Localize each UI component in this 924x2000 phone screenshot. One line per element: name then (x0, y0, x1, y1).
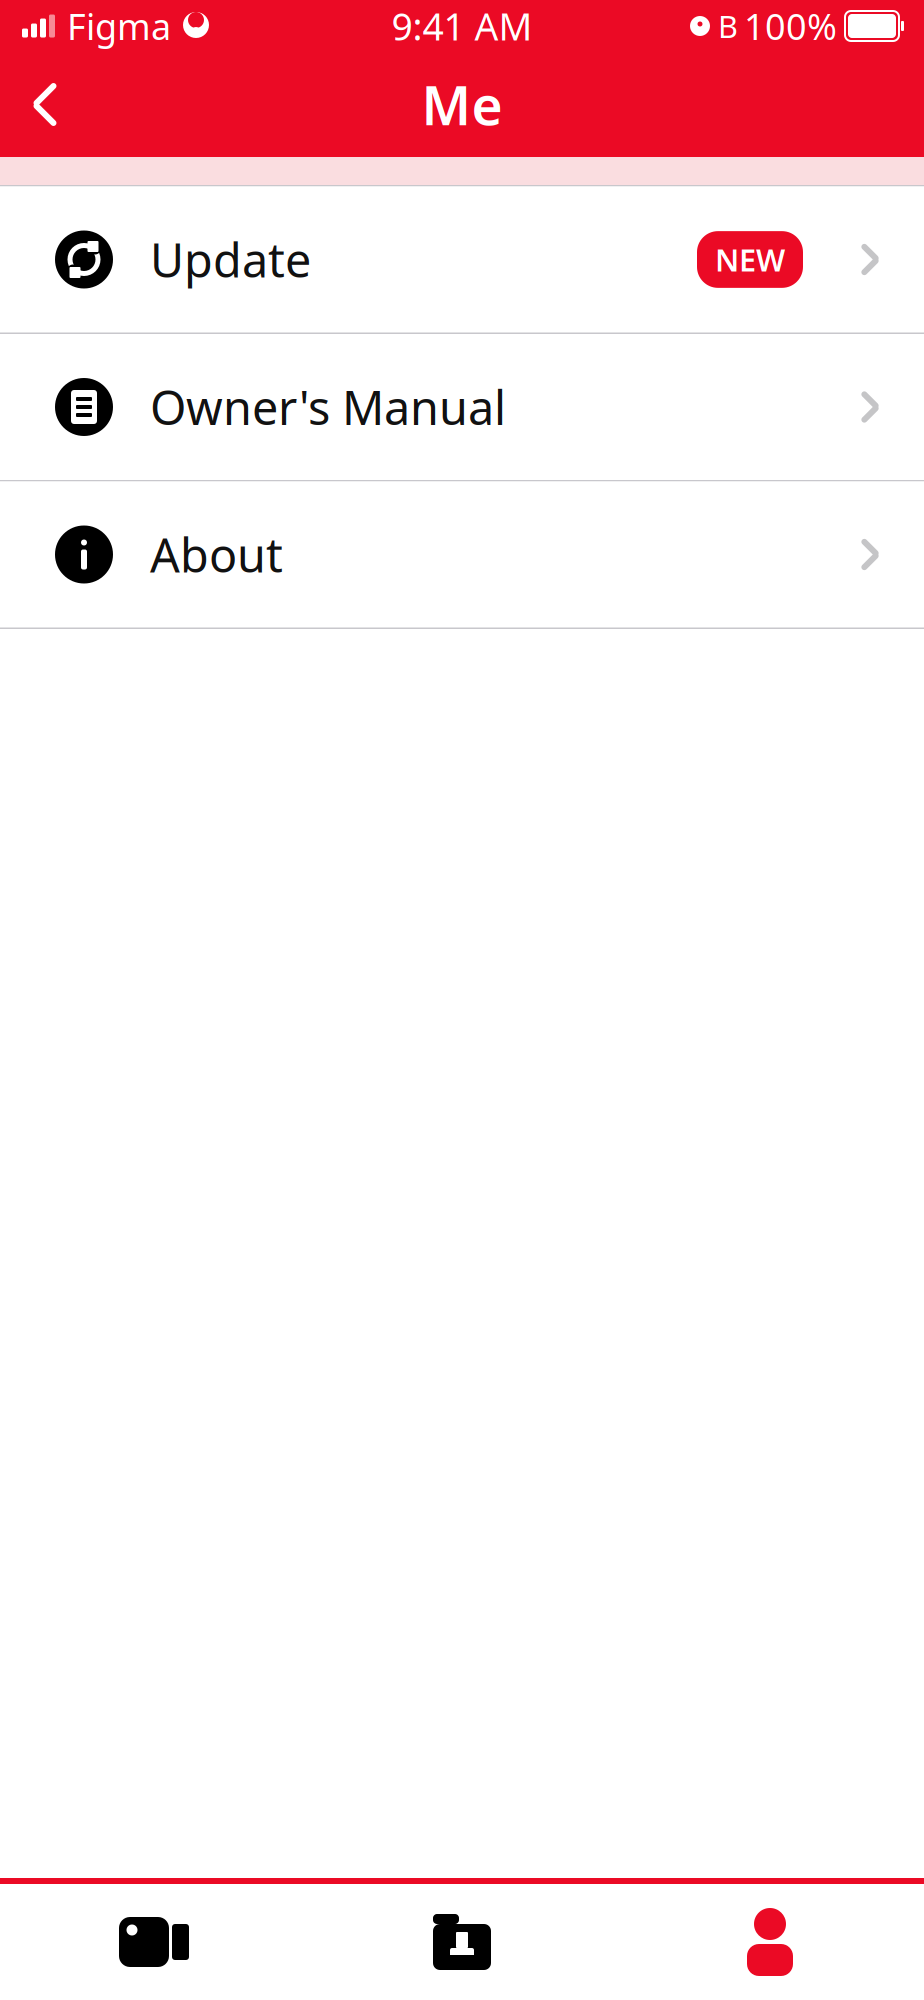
button[interactable]: About (0, 481, 924, 629)
staticText: 9:41 AM (391, 1, 532, 51)
button[interactable]: Live View (0, 1894, 308, 1990)
button[interactable]: Downloads (308, 1891, 616, 1993)
staticText: 100% (744, 2, 837, 50)
staticText: Me (421, 69, 502, 140)
staticText: Update (150, 228, 311, 290)
button[interactable]: Me (616, 1885, 924, 1999)
staticText: About (150, 523, 283, 585)
staticText: Owner's Manual (150, 376, 506, 438)
staticText: B (718, 6, 738, 46)
button[interactable]: Owner's Manual (0, 334, 924, 481)
staticText: NEW (715, 239, 785, 280)
staticText: Figma (67, 2, 171, 50)
button[interactable]: Back (0, 66, 80, 142)
button[interactable]: Update (0, 186, 924, 334)
